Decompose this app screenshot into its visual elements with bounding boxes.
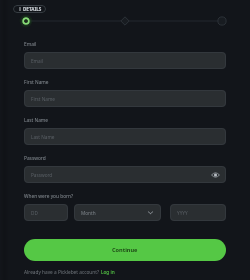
staticText: First Name <box>31 96 55 102</box>
staticText: First Name <box>24 79 49 86</box>
staticText: DD <box>31 210 38 216</box>
button[interactable]: Password <box>24 166 226 183</box>
staticText: Already have a Picklebet account? <box>24 269 101 275</box>
staticText: Continue <box>112 246 138 254</box>
staticText: YYYY <box>177 210 188 216</box>
button[interactable]: Email <box>24 52 226 69</box>
staticText: DETAILS <box>23 6 42 12</box>
staticText: Password <box>24 155 46 162</box>
button[interactable]: YYYY <box>170 204 226 221</box>
button[interactable]: DETAILS <box>13 5 46 13</box>
staticText: Email <box>24 41 37 48</box>
button[interactable]: DD <box>24 204 68 221</box>
button[interactable]: Continue <box>24 239 226 261</box>
button[interactable]: First Name <box>24 90 226 107</box>
button[interactable]: Last Name <box>24 128 226 145</box>
staticText: Last Name <box>24 117 49 124</box>
staticText: When were you born? <box>24 193 74 200</box>
button[interactable]: Log in <box>101 269 115 275</box>
staticText: Month <box>81 210 96 216</box>
button[interactable]: Month <box>74 204 161 221</box>
staticText: Email <box>31 58 44 64</box>
staticText: Last Name <box>31 134 55 140</box>
other: Show password <box>211 172 220 178</box>
staticText: Password <box>31 172 53 178</box>
other: Select month <box>147 209 154 216</box>
